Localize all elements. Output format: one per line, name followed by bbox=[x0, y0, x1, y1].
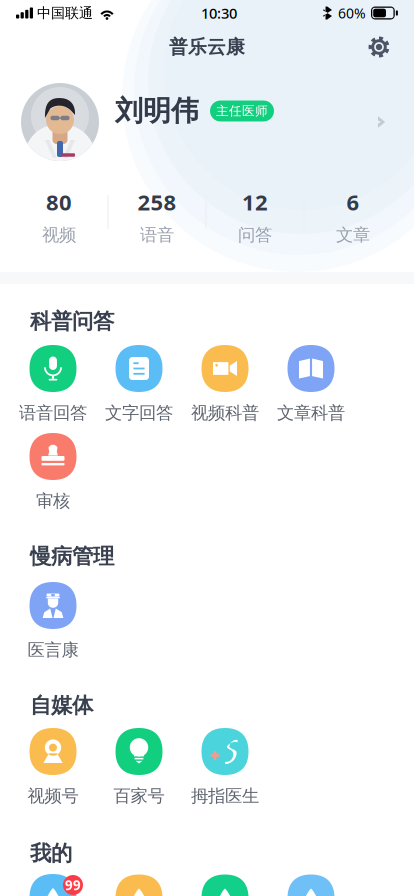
button[interactable]: 文章科普 bbox=[268, 345, 354, 424]
staticText: 中国联通 bbox=[37, 4, 93, 22]
staticText: 我的 bbox=[30, 840, 72, 867]
staticText: 文章科普 bbox=[277, 402, 345, 424]
staticText: 视频 bbox=[42, 224, 76, 246]
button[interactable]: 设置 bbox=[357, 30, 401, 64]
staticText: 258 bbox=[137, 187, 176, 217]
staticText: 视频科普 bbox=[191, 402, 259, 424]
staticText: 自媒体 bbox=[30, 692, 93, 719]
staticText: 审核 bbox=[36, 490, 70, 512]
staticText: 主任医师 bbox=[216, 103, 268, 119]
button[interactable]: 语音回答 bbox=[10, 345, 96, 424]
button[interactable]: 设置 bbox=[268, 874, 354, 896]
staticText: 科普问答 bbox=[30, 308, 114, 335]
staticText: 视频号 bbox=[27, 785, 78, 807]
staticText: 语音 bbox=[140, 224, 174, 246]
staticText: 拇指医生 bbox=[191, 785, 259, 807]
staticText: 问答 bbox=[238, 224, 272, 246]
staticText: 80 bbox=[46, 187, 72, 217]
button[interactable]: 6 bbox=[304, 187, 402, 251]
staticText: 百家号 bbox=[113, 785, 164, 807]
button[interactable]: 12 bbox=[206, 187, 304, 251]
staticText: 语音回答 bbox=[19, 402, 87, 424]
button[interactable]: 百家号 bbox=[96, 728, 182, 807]
button[interactable]: 拇指医生 bbox=[182, 728, 268, 807]
staticText: 99 bbox=[65, 876, 81, 894]
staticText: 文字回答 bbox=[105, 402, 173, 424]
button[interactable]: 视频科普 bbox=[182, 345, 268, 424]
staticText: 刘明伟 bbox=[115, 93, 199, 129]
staticText: 12 bbox=[242, 187, 268, 217]
staticText: 慢病管理 bbox=[30, 543, 114, 570]
button[interactable]: 消息 bbox=[10, 874, 96, 896]
button[interactable]: 80 bbox=[10, 187, 108, 251]
staticText: 10:30 bbox=[201, 3, 237, 23]
button[interactable]: 文字回答 bbox=[96, 345, 182, 424]
button[interactable]: 订单 bbox=[96, 874, 182, 896]
staticText: 普乐云康 bbox=[169, 35, 245, 59]
staticText: 医言康 bbox=[27, 639, 78, 661]
button[interactable]: 收益 bbox=[182, 874, 268, 896]
button[interactable]: 刘明伟 bbox=[0, 74, 414, 170]
button[interactable]: 视频号 bbox=[10, 728, 96, 807]
button[interactable]: 医言康 bbox=[10, 582, 96, 661]
button[interactable]: 审核 bbox=[10, 433, 96, 512]
staticText: 文章 bbox=[336, 224, 370, 246]
staticText: 60% bbox=[338, 3, 366, 23]
staticText: 6 bbox=[346, 187, 359, 217]
button[interactable]: 258 bbox=[108, 187, 206, 251]
